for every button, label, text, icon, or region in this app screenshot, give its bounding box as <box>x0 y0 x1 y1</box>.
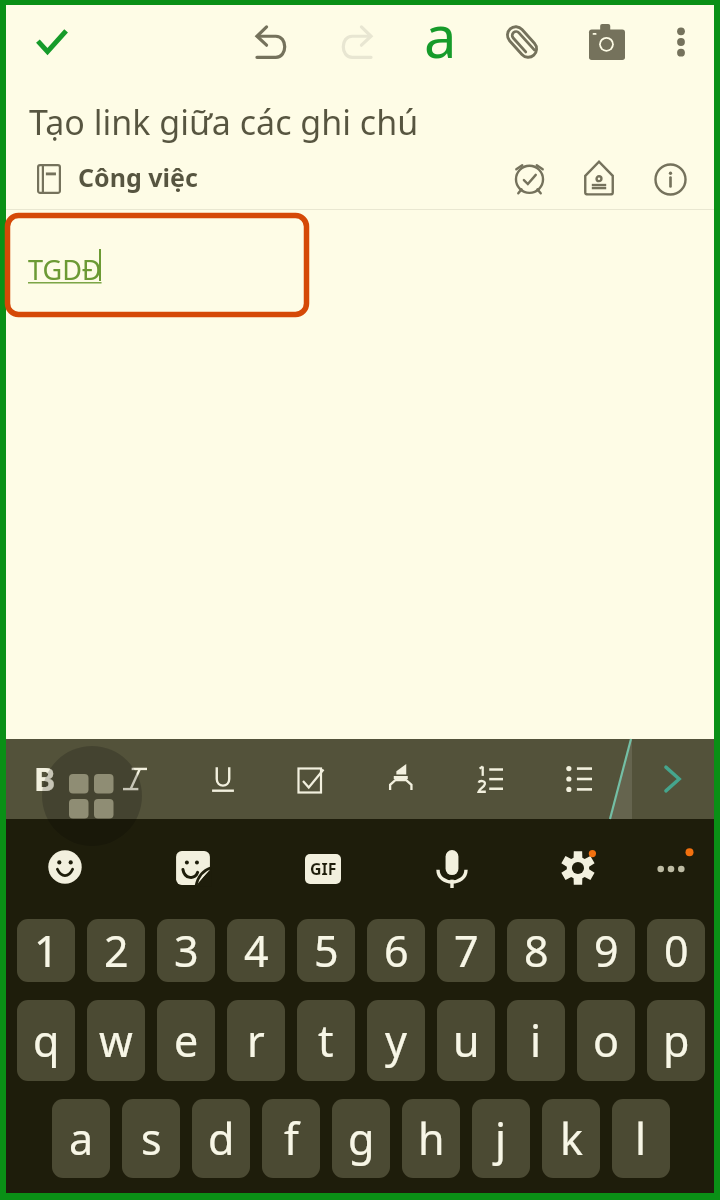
staticText: t <box>318 1011 334 1070</box>
staticText: k <box>560 1109 583 1168</box>
button[interactable]: 1 <box>17 919 75 982</box>
staticText: TGDĐ <box>28 251 102 288</box>
button[interactable]: 9 <box>577 919 635 982</box>
button[interactable]: t <box>297 1000 355 1081</box>
button[interactable]: Redo <box>325 11 387 73</box>
staticText: w <box>99 1011 133 1070</box>
button[interactable]: Checklist <box>284 754 336 806</box>
button[interactable]: More <box>647 837 703 893</box>
staticText: o <box>593 1011 620 1070</box>
button[interactable]: j <box>472 1099 530 1178</box>
staticText: 1 <box>34 921 59 980</box>
staticText: 5 <box>314 921 339 980</box>
staticText: 9 <box>594 921 619 980</box>
button[interactable]: Tags <box>571 150 627 206</box>
button[interactable]: Stickers <box>165 840 221 896</box>
staticText: i <box>530 1011 542 1070</box>
staticText: g <box>348 1109 375 1168</box>
button[interactable]: a <box>52 1099 110 1178</box>
button[interactable]: o <box>577 1000 635 1081</box>
staticText: d <box>208 1109 235 1168</box>
staticText: B <box>34 757 56 801</box>
button[interactable]: Text formatting <box>405 0 475 66</box>
staticText: e <box>174 1011 199 1070</box>
staticText: 8 <box>524 921 549 980</box>
button[interactable]: Bulleted list <box>553 753 605 805</box>
staticText: GIF <box>310 858 337 880</box>
button[interactable]: Numbered list <box>464 753 516 805</box>
button[interactable]: 4 <box>227 919 285 982</box>
button[interactable]: 5 <box>297 919 355 982</box>
staticText: y <box>385 1011 407 1070</box>
button[interactable]: Keyboard settings <box>553 840 609 896</box>
button[interactable]: k <box>542 1099 600 1178</box>
button[interactable]: Undo <box>241 11 303 73</box>
button[interactable]: Note info <box>642 151 698 207</box>
button[interactable]: d <box>192 1099 250 1178</box>
button[interactable]: Highlight <box>374 751 426 803</box>
button[interactable]: Emoji <box>37 839 93 895</box>
staticText: r <box>247 1011 265 1070</box>
button[interactable]: w <box>87 1000 145 1081</box>
button[interactable]: Attach file <box>491 11 553 73</box>
button[interactable]: p <box>647 1000 705 1081</box>
button[interactable]: More options <box>653 14 709 70</box>
button[interactable]: i <box>507 1000 565 1081</box>
button[interactable]: 7 <box>437 919 495 982</box>
staticText: s <box>141 1109 162 1168</box>
button[interactable]: Underline <box>197 753 249 805</box>
staticText: a <box>424 0 457 66</box>
button[interactable]: r <box>227 1000 285 1081</box>
button[interactable]: u <box>437 1000 495 1081</box>
button[interactable]: Camera <box>576 11 638 73</box>
button[interactable]: h <box>402 1099 460 1178</box>
staticText: Công việc <box>78 160 198 194</box>
staticText: p <box>663 1011 690 1070</box>
staticText: Tạo link giữa các ghi chú <box>29 99 419 145</box>
button[interactable]: 6 <box>367 919 425 982</box>
button[interactable]: 3 <box>157 919 215 982</box>
staticText: l <box>635 1109 647 1168</box>
button[interactable]: f <box>262 1099 320 1178</box>
button[interactable]: l <box>612 1099 670 1178</box>
staticText: 2 <box>104 921 129 980</box>
staticText: h <box>418 1109 445 1168</box>
staticText: u <box>453 1011 480 1070</box>
staticText: 4 <box>244 921 269 980</box>
button[interactable]: Reminder <box>501 149 557 205</box>
button[interactable]: y <box>367 1000 425 1081</box>
button[interactable]: g <box>332 1099 390 1178</box>
button[interactable]: s <box>122 1099 180 1178</box>
staticText: 0 <box>664 921 689 980</box>
button[interactable]: 8 <box>507 919 565 982</box>
button[interactable]: Italic <box>109 753 161 805</box>
button[interactable]: GIF <box>295 841 351 897</box>
button[interactable]: Bold <box>19 753 71 805</box>
button[interactable]: 2 <box>87 919 145 982</box>
button[interactable]: q <box>17 1000 75 1081</box>
button[interactable]: Expand <box>646 753 698 805</box>
staticText: j <box>495 1109 507 1168</box>
staticText: 3 <box>174 921 199 980</box>
staticText: a <box>69 1109 94 1168</box>
button[interactable]: Voice input <box>424 841 480 897</box>
staticText: f <box>284 1109 299 1168</box>
staticText: q <box>33 1011 60 1070</box>
staticText: 6 <box>384 921 409 980</box>
button[interactable]: e <box>157 1000 215 1081</box>
button[interactable]: Save <box>21 11 83 73</box>
staticText: 7 <box>454 921 479 980</box>
button[interactable]: 0 <box>647 919 705 982</box>
